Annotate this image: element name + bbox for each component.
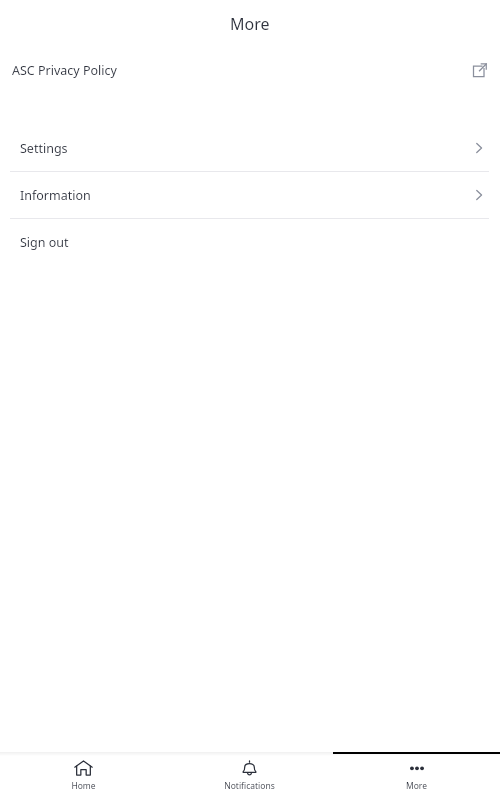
button[interactable]: Notifications [166, 752, 333, 800]
other: Home [74, 760, 93, 776]
button[interactable]: Settings [0, 125, 500, 171]
staticText: ASC Privacy Policy [12, 62, 117, 79]
staticText: Home [71, 780, 96, 792]
staticText: More [406, 780, 427, 792]
button[interactable]: More [333, 752, 500, 800]
button[interactable]: ASC Privacy Policy [0, 47, 500, 93]
other: Open ASC Privacy Policy in browser [472, 63, 487, 78]
staticText: Sign out [20, 234, 69, 251]
button[interactable]: Information [0, 172, 500, 218]
button[interactable]: Sign out [0, 219, 500, 265]
button[interactable]: Home [0, 752, 166, 800]
staticText: More [230, 13, 270, 35]
staticText: Notifications [224, 780, 275, 792]
other: Notifications [241, 760, 258, 776]
staticText: Settings [20, 140, 68, 157]
staticText: Information [20, 187, 91, 204]
other: More [406, 760, 428, 776]
